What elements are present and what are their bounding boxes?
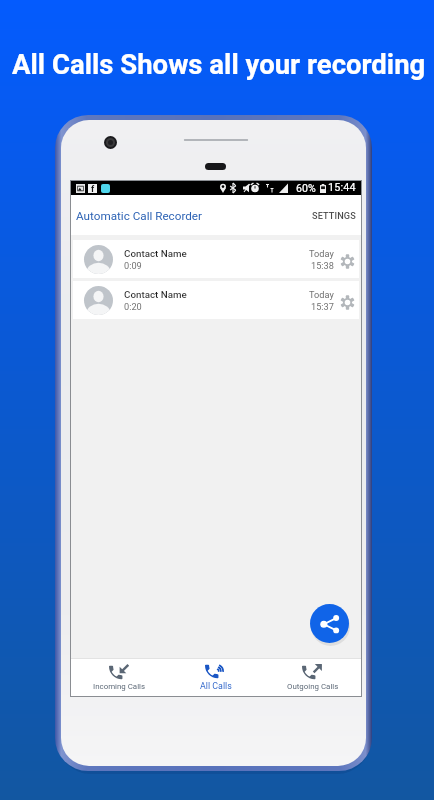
- button[interactable]: Contact Name: [73, 240, 359, 278]
- staticText: SETTINGS: [312, 210, 356, 221]
- staticText: 0:20: [124, 301, 142, 312]
- staticText: f: [91, 184, 95, 193]
- staticText: Contact Name: [124, 289, 187, 300]
- button[interactable]: SETTINGS: [304, 200, 361, 231]
- staticText: 15:37: [311, 301, 334, 312]
- staticText: All Calls: [200, 681, 232, 691]
- staticText: 60%: [296, 182, 316, 194]
- staticText: Today: [309, 248, 334, 259]
- staticText: 15:38: [311, 260, 334, 271]
- staticText: 0:09: [124, 260, 142, 271]
- button[interactable]: Options: [337, 251, 357, 271]
- button[interactable]: Outgoing Calls: [264, 662, 361, 694]
- staticText: Automatic Call Recorder: [76, 209, 202, 223]
- button[interactable]: Options: [337, 292, 357, 312]
- button[interactable]: Contact Name: [73, 281, 359, 319]
- button[interactable]: Share: [310, 604, 349, 643]
- staticText: All Calls Shows all your recording: [12, 48, 426, 80]
- staticText: Incoming Calls: [93, 682, 146, 691]
- button[interactable]: Incoming Calls: [71, 662, 167, 694]
- staticText: Today: [309, 289, 334, 300]
- staticText: 15:44: [328, 181, 356, 194]
- staticText: Outgoing Calls: [287, 682, 339, 691]
- button[interactable]: All Calls: [167, 661, 264, 694]
- staticText: Contact Name: [124, 248, 187, 259]
